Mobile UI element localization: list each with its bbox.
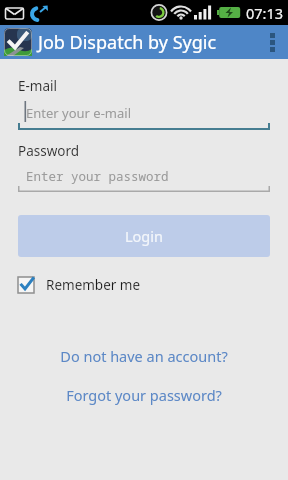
button[interactable]: Enter your e-mail: [18, 95, 270, 130]
staticText: Enter your e-mail: [26, 104, 131, 122]
staticText: Job Dispatch by Sygic: [38, 30, 217, 55]
staticText: Login: [125, 226, 163, 246]
button[interactable]: [270, 33, 275, 52]
button[interactable]: Forgot your password?: [18, 385, 270, 405]
staticText: Remember me: [46, 276, 141, 294]
button[interactable]: Login: [18, 215, 270, 257]
staticText: 07:13: [246, 3, 284, 23]
staticText: Enter your password: [26, 168, 169, 185]
button[interactable]: Remember me: [18, 276, 141, 294]
staticText: Password: [18, 142, 80, 160]
button[interactable]: Enter your password: [18, 160, 270, 192]
button[interactable]: Do not have an account?: [18, 346, 270, 366]
staticText: E-mail: [18, 77, 58, 95]
